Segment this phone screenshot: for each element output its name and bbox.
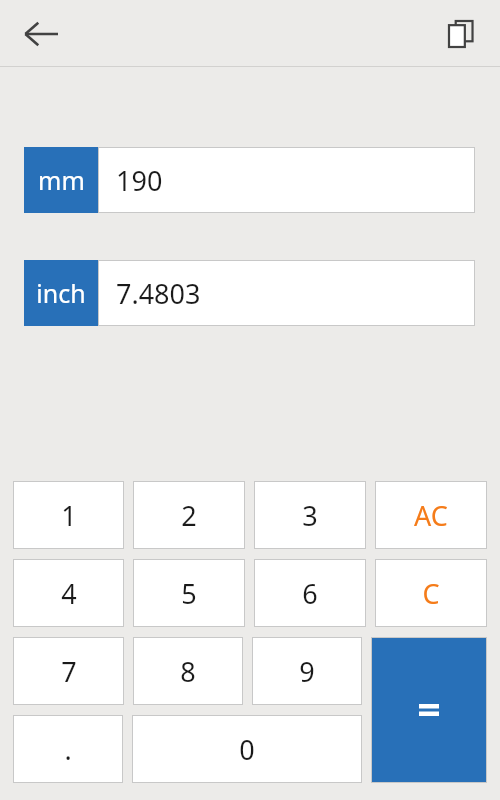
button[interactable]: 8 [133,637,243,705]
button[interactable]: 5 [133,559,245,627]
staticText: 2 [181,497,197,534]
button[interactable]: AC [375,481,487,549]
button[interactable]: mm [24,147,475,213]
button[interactable]: 4 [13,559,124,627]
button[interactable]: . [13,715,123,783]
staticText: 190 [116,162,163,199]
staticText: 4 [61,575,77,612]
button[interactable] [371,637,487,783]
staticText: 5 [181,575,197,612]
button[interactable]: inch [24,260,475,326]
button[interactable]: 7 [13,637,124,705]
button[interactable]: 2 [133,481,245,549]
button[interactable]: 0 [132,715,362,783]
staticText: 7.4803 [116,275,201,312]
button[interactable]: 9 [252,637,362,705]
staticText: 6 [302,575,318,612]
staticText: 7 [61,653,77,690]
staticText: 3 [302,497,318,534]
staticText: . [64,731,72,768]
staticText: 1 [61,497,77,534]
staticText: inch [36,276,86,310]
staticText: 0 [239,731,255,768]
staticText: 9 [299,653,315,690]
button[interactable]: 3 [254,481,366,549]
staticText: C [422,575,440,612]
button[interactable]: 6 [254,559,366,627]
button[interactable]: Back [12,5,70,63]
button[interactable]: 1 [13,481,124,549]
button[interactable]: C [375,559,487,627]
button[interactable]: Copy [434,7,488,61]
staticText: AC [414,497,448,534]
staticText: 8 [180,653,196,690]
staticText: mm [38,163,85,197]
